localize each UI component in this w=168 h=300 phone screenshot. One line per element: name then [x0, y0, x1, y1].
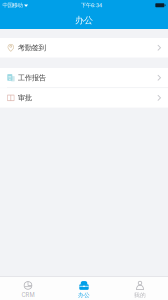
button[interactable]: 审批: [0, 88, 168, 108]
staticText: 考勤签到: [18, 43, 46, 52]
staticText: 审批: [18, 93, 32, 102]
staticText: 下午6:34: [81, 2, 103, 9]
staticText: 工作报告: [18, 73, 46, 82]
button[interactable]: 我的: [112, 277, 168, 300]
button[interactable]: 考勤签到: [0, 38, 168, 57]
staticText: 办公: [78, 292, 90, 299]
staticText: 办公: [75, 15, 93, 26]
button[interactable]: CRM: [0, 277, 56, 300]
button[interactable]: 工作报告: [0, 68, 168, 87]
staticText: CRM: [21, 292, 34, 298]
staticText: 我的: [134, 292, 146, 299]
button[interactable]: 办公: [56, 277, 112, 300]
button[interactable]: 办公: [72, 15, 96, 26]
staticText: 中国移动: [2, 2, 22, 9]
